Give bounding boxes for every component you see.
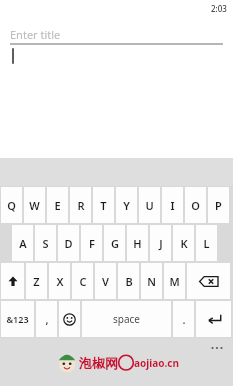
staticText: V (102, 274, 109, 289)
button[interactable]: Enter (196, 301, 231, 337)
button[interactable]: &123 (1, 301, 34, 337)
staticText: R (77, 198, 85, 213)
staticText: Z (33, 274, 40, 289)
button[interactable]: Q (1, 187, 22, 223)
staticText: I (170, 198, 175, 213)
staticText: P (215, 198, 222, 213)
button[interactable]: space (82, 301, 171, 337)
staticText: A (19, 236, 27, 251)
staticText: C (79, 274, 87, 289)
button[interactable]: M (164, 263, 185, 299)
staticText: G (111, 236, 119, 251)
staticText: Q (7, 198, 16, 213)
staticText: J (159, 236, 163, 251)
staticText: . (182, 312, 186, 327)
button[interactable]: Shift (1, 263, 24, 299)
button[interactable]: , (36, 301, 57, 337)
staticText: &123 (6, 313, 29, 325)
button[interactable]: L (196, 225, 217, 261)
button[interactable]: . (173, 301, 194, 337)
button[interactable]: W (24, 187, 45, 223)
staticText: L (203, 236, 210, 251)
staticText: T (100, 198, 107, 213)
staticText: M (169, 274, 180, 289)
staticText: N (147, 274, 156, 289)
button[interactable]: Y (116, 187, 137, 223)
button[interactable]: X (49, 263, 70, 299)
button[interactable]: F (81, 225, 102, 261)
button[interactable]: O (185, 187, 206, 223)
button[interactable]: J (150, 225, 171, 261)
staticText: aojiao.cn (134, 356, 179, 370)
staticText: E (54, 198, 61, 213)
staticText: space (113, 312, 140, 326)
button[interactable]: Emoji (59, 301, 80, 337)
staticText: W (29, 198, 40, 213)
button[interactable]: E (47, 187, 68, 223)
staticText: 2:03 (211, 3, 227, 14)
staticText: Y (123, 198, 130, 213)
button[interactable]: B (118, 263, 139, 299)
button[interactable]: P (208, 187, 229, 223)
staticText: U (145, 198, 154, 213)
button[interactable]: H (127, 225, 148, 261)
staticText: K (180, 236, 188, 251)
button[interactable]: I (162, 187, 183, 223)
button[interactable]: N (141, 263, 162, 299)
staticText: X (56, 274, 64, 289)
button[interactable]: K (173, 225, 194, 261)
staticText: Enter title (10, 27, 61, 42)
button[interactable]: Z (26, 263, 47, 299)
button[interactable]: G (104, 225, 125, 261)
button[interactable]: Backspace (187, 263, 230, 299)
staticText: F (89, 236, 95, 251)
button[interactable]: V (95, 263, 116, 299)
staticText: S (42, 236, 49, 251)
button[interactable]: U (139, 187, 160, 223)
staticText: B (125, 274, 133, 289)
button[interactable]: More options (207, 341, 227, 355)
staticText: O (191, 198, 200, 213)
button[interactable]: C (72, 263, 93, 299)
button[interactable]: T (93, 187, 114, 223)
staticText: D (64, 236, 73, 251)
button[interactable]: D (58, 225, 79, 261)
button[interactable]: S (35, 225, 56, 261)
staticText: H (133, 236, 142, 251)
button[interactable]: A (12, 225, 33, 261)
staticText: 泡椒网 (79, 355, 118, 371)
staticText: , (45, 312, 49, 327)
button[interactable]: R (70, 187, 91, 223)
